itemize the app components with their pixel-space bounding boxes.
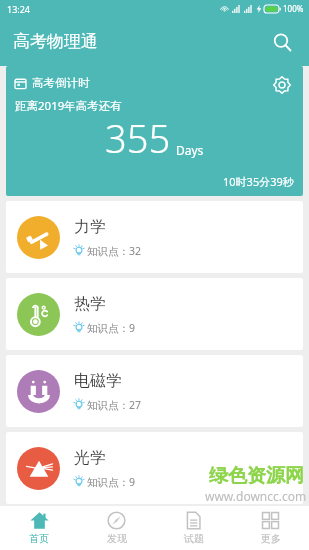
staticText: 距离2019年高考还有 — [15, 98, 122, 114]
staticText: 绿色资源网 — [209, 464, 304, 488]
button[interactable]: 电磁学 — [6, 355, 303, 427]
staticText: 更多 — [261, 532, 281, 545]
staticText: 100% — [283, 3, 304, 14]
staticText: 355 — [105, 112, 171, 164]
staticText: 光学 — [74, 448, 106, 468]
staticText: 10时35分39秒 — [223, 174, 294, 189]
staticText: 知识点：27 — [87, 398, 142, 412]
staticText: 高考倒计时 — [32, 76, 90, 90]
staticText: 知识点：9 — [87, 475, 136, 489]
button[interactable]: 首页 — [0, 506, 78, 550]
staticText: 知识点：9 — [87, 321, 136, 335]
staticText: 试题 — [184, 532, 204, 545]
staticText: 13:24 — [7, 3, 31, 15]
staticText: 首页 — [29, 532, 49, 545]
staticText: 高考物理通 — [13, 31, 98, 52]
staticText: 电磁学 — [74, 371, 122, 391]
button[interactable]: 热学 — [6, 278, 303, 350]
staticText: 发现 — [107, 532, 127, 545]
button[interactable]: 发现 — [78, 506, 155, 550]
button[interactable]: 光学 — [6, 432, 303, 504]
button[interactable]: Search — [263, 23, 301, 61]
staticText: 知识点：32 — [87, 244, 142, 258]
button[interactable]: 高考倒计时 — [6, 66, 303, 196]
staticText: www.downcc.com — [205, 488, 307, 504]
staticText: 力学 — [74, 217, 106, 237]
button[interactable]: 试题 — [155, 506, 232, 550]
staticText: Days — [176, 142, 204, 158]
staticText: 热学 — [74, 294, 106, 314]
button[interactable]: 更多 — [232, 506, 309, 550]
button[interactable]: 力学 — [6, 201, 303, 273]
button[interactable]: Settings — [267, 70, 297, 100]
